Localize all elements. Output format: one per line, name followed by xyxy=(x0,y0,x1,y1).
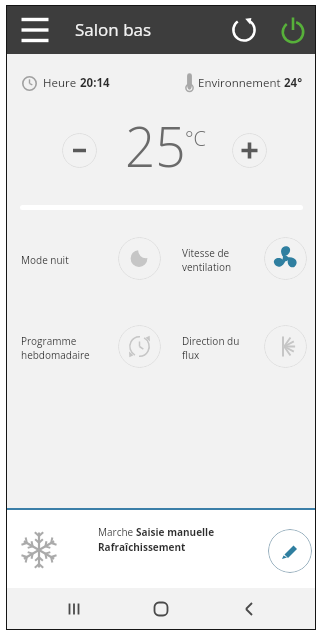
button[interactable]: Vitesse de ventilation xyxy=(264,237,307,280)
button[interactable]: Refresh xyxy=(224,10,264,50)
staticText: 24° xyxy=(284,75,303,91)
staticText: Direction du flux xyxy=(182,334,240,362)
button[interactable]: Menu xyxy=(15,10,55,50)
staticText: °C xyxy=(185,125,206,152)
button[interactable]: Home xyxy=(141,589,181,629)
button[interactable]: Direction du flux xyxy=(264,325,307,368)
staticText: 25 xyxy=(125,107,186,183)
staticText: Vitesse de ventilation xyxy=(182,246,232,274)
staticText: Environnement xyxy=(198,75,284,91)
button[interactable]: Edit xyxy=(268,529,312,573)
button[interactable]: Recents xyxy=(54,589,94,629)
button[interactable]: Back xyxy=(228,589,268,629)
button[interactable]: Mode nuit xyxy=(118,237,161,280)
staticText: Salon bas xyxy=(75,18,152,41)
button[interactable]: Power xyxy=(273,10,313,50)
staticText: Heure xyxy=(43,75,80,91)
button[interactable]: Increase temperature xyxy=(232,133,267,168)
button[interactable]: Decrease temperature xyxy=(62,133,97,168)
staticText: Programme hebdomadaire xyxy=(21,334,90,362)
staticText: Marche xyxy=(98,525,136,539)
staticText: Saisie manuelle xyxy=(136,525,215,539)
staticText: 20:14 xyxy=(80,75,110,91)
staticText: Rafraîchissement xyxy=(98,540,186,554)
staticText: Mode nuit xyxy=(21,253,69,267)
button[interactable]: Programme hebdomadaire xyxy=(118,325,161,368)
